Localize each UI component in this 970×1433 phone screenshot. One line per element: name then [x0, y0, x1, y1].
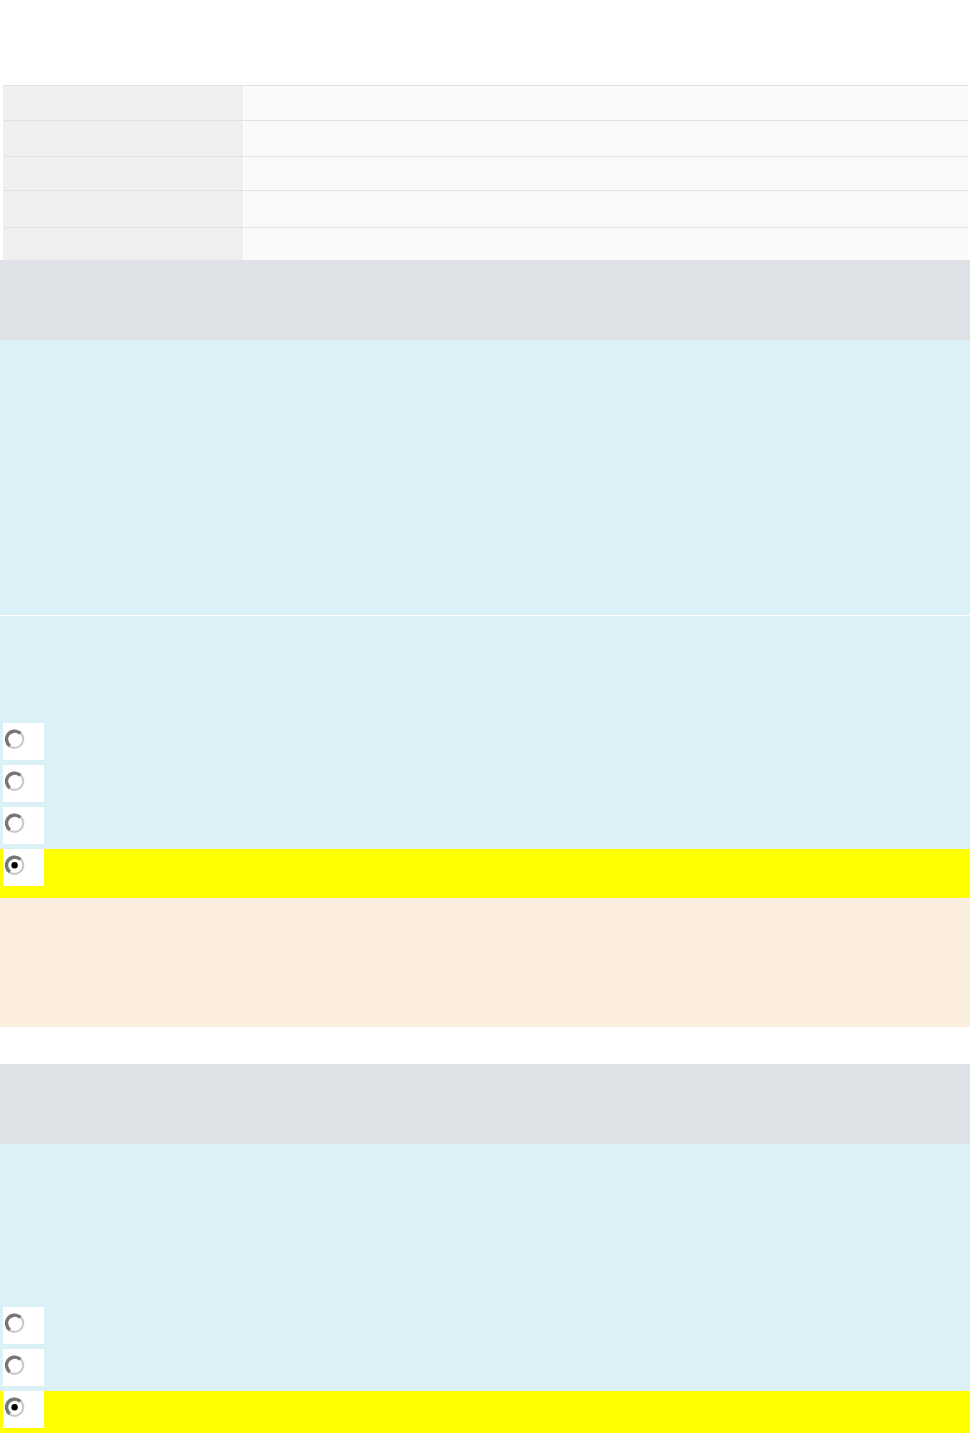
button[interactable]: Choice	[3, 1307, 44, 1344]
button[interactable]: Selected choice	[3, 1391, 44, 1428]
button[interactable]: Choice	[3, 723, 44, 760]
button[interactable]: Choice	[3, 1349, 44, 1386]
button[interactable]: Selected choice	[3, 849, 44, 886]
button[interactable]: Choice	[3, 807, 44, 844]
button[interactable]: Choice	[3, 765, 44, 802]
